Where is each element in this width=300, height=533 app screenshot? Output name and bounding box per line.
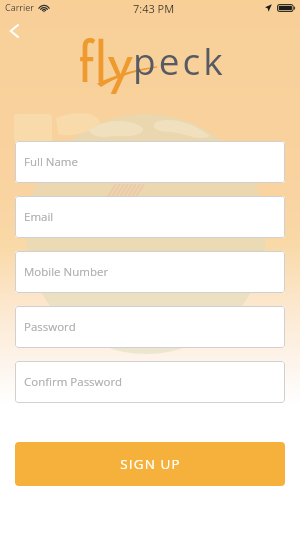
button[interactable]: SIGN UP <box>15 442 285 486</box>
button[interactable]: Full Name <box>15 141 285 183</box>
staticText: Mobile Number <box>24 264 109 280</box>
staticText: fly <box>78 22 134 103</box>
staticText: Confirm Password <box>24 374 123 390</box>
button[interactable]: Back <box>3 20 25 42</box>
staticText: peck <box>133 35 226 85</box>
button[interactable]: Mobile Number <box>15 251 285 293</box>
staticText: Full Name <box>24 154 78 170</box>
staticText: Email <box>24 209 54 225</box>
button[interactable]: Confirm Password <box>15 361 285 403</box>
staticText: Carrier <box>5 1 35 13</box>
staticText: 7:43 PM <box>133 1 175 16</box>
staticText: Password <box>24 319 76 335</box>
button[interactable]: Password <box>15 306 285 348</box>
staticText: SIGN UP <box>120 455 181 473</box>
button[interactable]: Email <box>15 196 285 238</box>
